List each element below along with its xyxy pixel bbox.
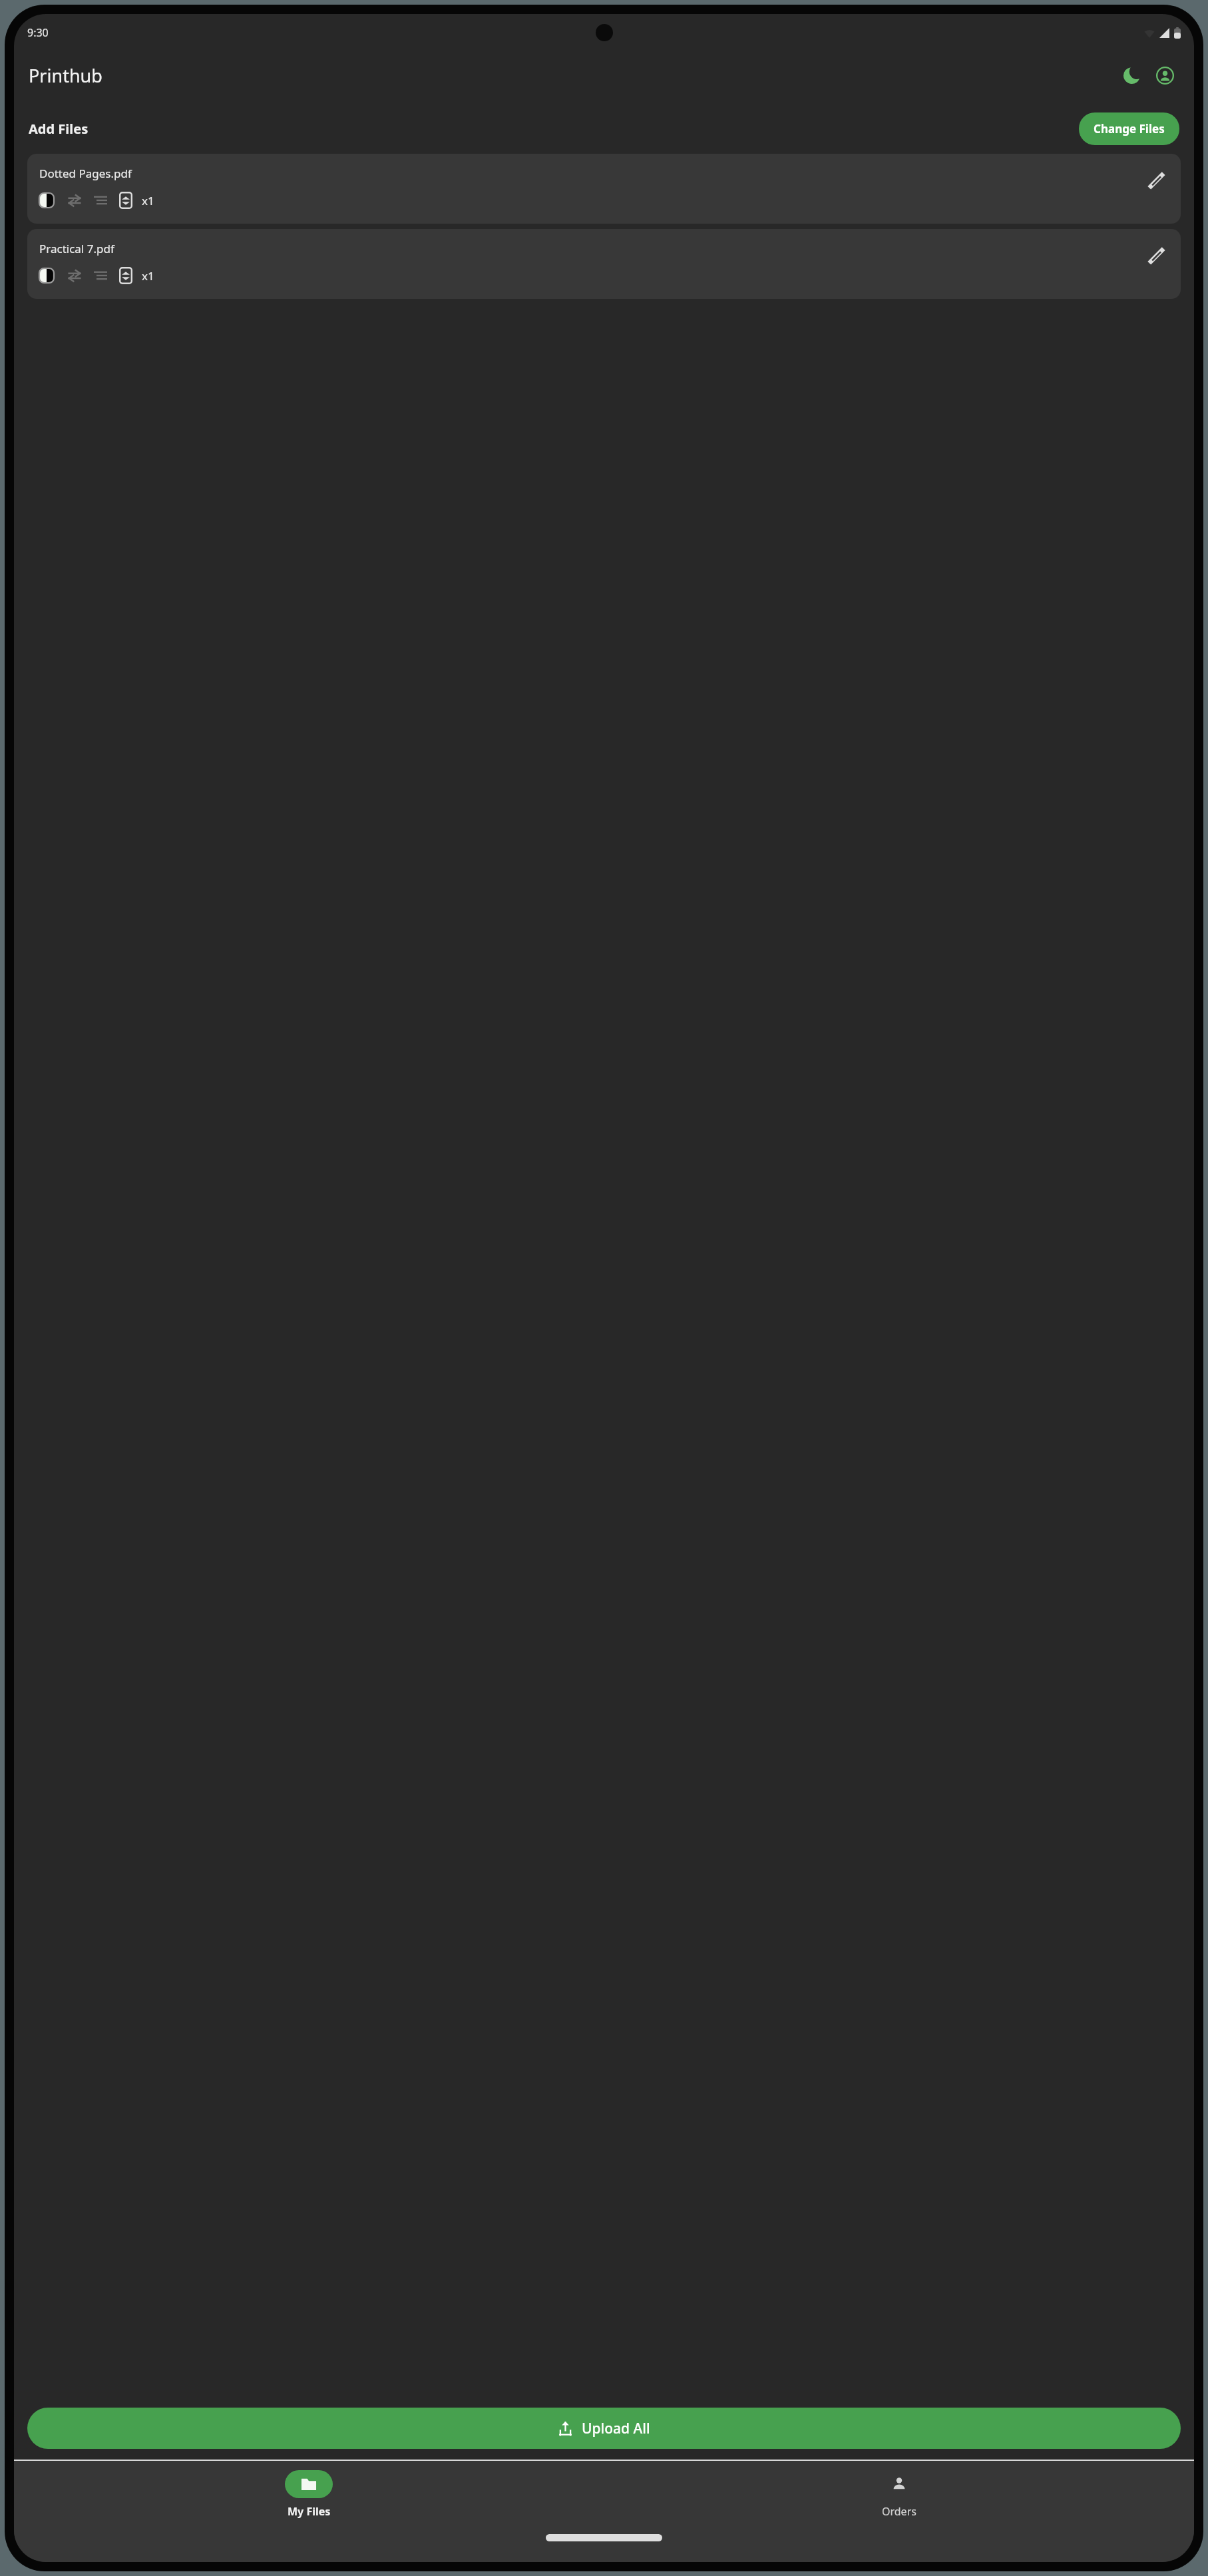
staticText: Orders: [882, 2504, 916, 2519]
button[interactable]: Change Files: [1079, 112, 1179, 145]
button[interactable]: Orders: [604, 2470, 1194, 2519]
staticText: Change Files: [1094, 121, 1165, 136]
staticText: Practical 7.pdf: [39, 241, 114, 256]
staticText: Printhub: [29, 63, 102, 88]
staticText: x1: [142, 268, 154, 284]
button[interactable]: Edit file settings: [1142, 166, 1171, 195]
staticText: Dotted Pages.pdf: [39, 166, 132, 181]
button[interactable]: Edit file settings: [1142, 241, 1171, 270]
button[interactable]: My Files: [14, 2470, 604, 2519]
button[interactable]: Practical 7.pdf: [27, 229, 1181, 299]
staticText: x1: [142, 193, 154, 208]
staticText: My Files: [288, 2504, 331, 2519]
button[interactable]: Upload All: [27, 2408, 1181, 2449]
staticText: 9:30: [27, 25, 49, 40]
button[interactable]: Toggle dark mode: [1117, 61, 1146, 90]
staticText: Upload All: [582, 2419, 650, 2438]
button[interactable]: Account: [1150, 61, 1179, 90]
staticText: Add Files: [29, 120, 89, 138]
button[interactable]: Dotted Pages.pdf: [27, 154, 1181, 224]
